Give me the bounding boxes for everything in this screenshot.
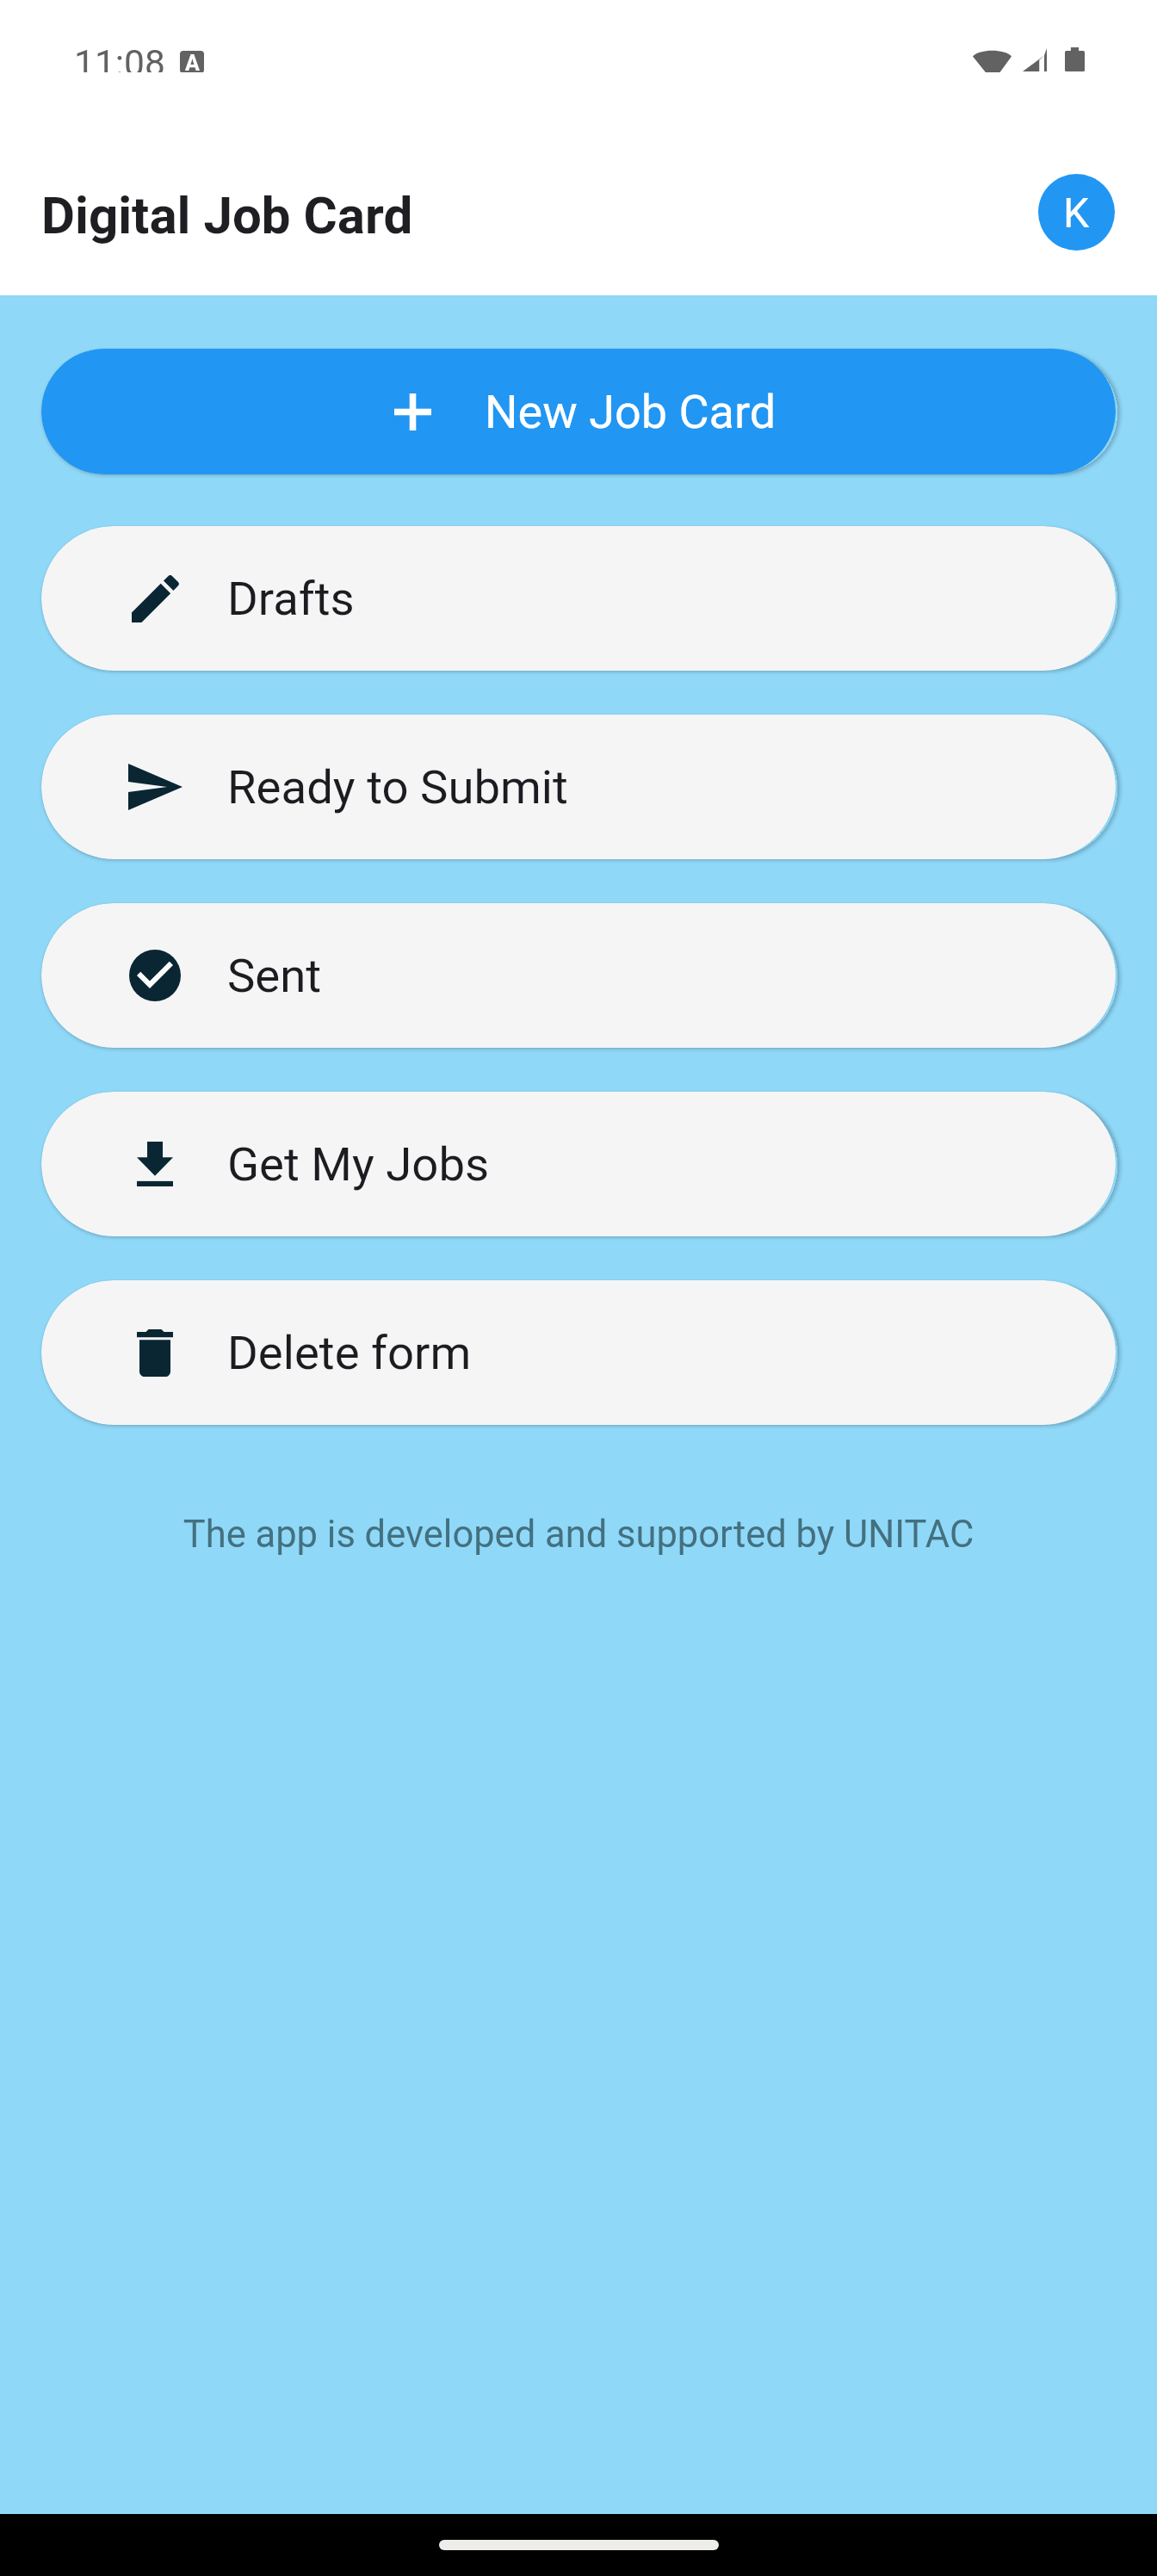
staticText: Digital Job Card <box>41 185 413 245</box>
button[interactable]: Sent <box>41 903 1116 1048</box>
staticText: The app is developed and supported by UN… <box>0 1513 1157 1557</box>
staticText: Drafts <box>227 571 355 626</box>
staticText: Delete form <box>227 1325 472 1380</box>
staticText: Get My Jobs <box>227 1136 490 1192</box>
staticText: Sent <box>227 948 322 1003</box>
staticText: Ready to Submit <box>227 759 568 814</box>
staticText: A <box>185 51 200 72</box>
button[interactable]: Account <box>1038 174 1115 251</box>
button[interactable]: New Job Card <box>41 349 1116 474</box>
button[interactable]: Delete form <box>41 1280 1116 1425</box>
staticText: 11:08 <box>74 42 165 72</box>
button[interactable]: Drafts <box>41 526 1116 671</box>
staticText: K <box>1063 189 1090 237</box>
button[interactable]: Ready to Submit <box>41 715 1116 859</box>
button[interactable]: Get My Jobs <box>41 1092 1116 1236</box>
staticText: New Job Card <box>485 385 776 439</box>
